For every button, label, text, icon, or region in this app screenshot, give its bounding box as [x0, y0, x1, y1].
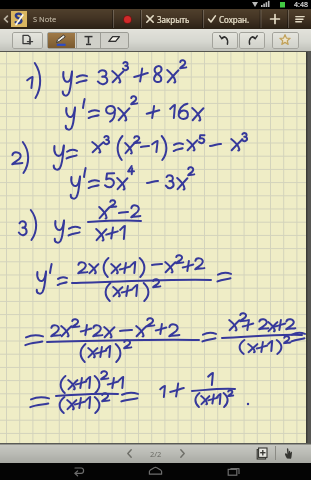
- staticText: 4:48: [294, 0, 308, 9]
- button[interactable]: Undo: [212, 32, 238, 49]
- button[interactable]: Add: [262, 9, 287, 29]
- button[interactable]: Recent apps: [218, 463, 250, 480]
- button[interactable]: Record: [117, 9, 137, 29]
- button[interactable]: Eraser: [102, 33, 127, 48]
- button[interactable]: Home: [139, 463, 172, 480]
- button[interactable]: Redo: [239, 32, 265, 49]
- button[interactable]: Сохран.: [204, 9, 260, 29]
- button[interactable]: Закрыть: [142, 9, 202, 29]
- button[interactable]: Text: [78, 33, 99, 48]
- button[interactable]: Back: [0, 9, 11, 29]
- staticText: Закрыть: [157, 14, 190, 25]
- button[interactable]: Add page: [250, 445, 274, 462]
- button[interactable]: Next page: [171, 445, 193, 462]
- staticText: 2/2: [150, 449, 162, 459]
- staticText: S Note: [33, 14, 57, 24]
- button[interactable]: Back: [62, 463, 94, 480]
- button[interactable]: Pen: [48, 33, 75, 48]
- button[interactable]: S Note: [11, 11, 27, 27]
- button[interactable]: Hand tool: [278, 445, 300, 462]
- button[interactable]: More options: [289, 9, 311, 29]
- staticText: Сохран.: [219, 14, 250, 25]
- button[interactable]: Previous page: [118, 445, 140, 462]
- button[interactable]: Favourite: [272, 32, 299, 49]
- button[interactable]: Insert: [12, 32, 43, 49]
